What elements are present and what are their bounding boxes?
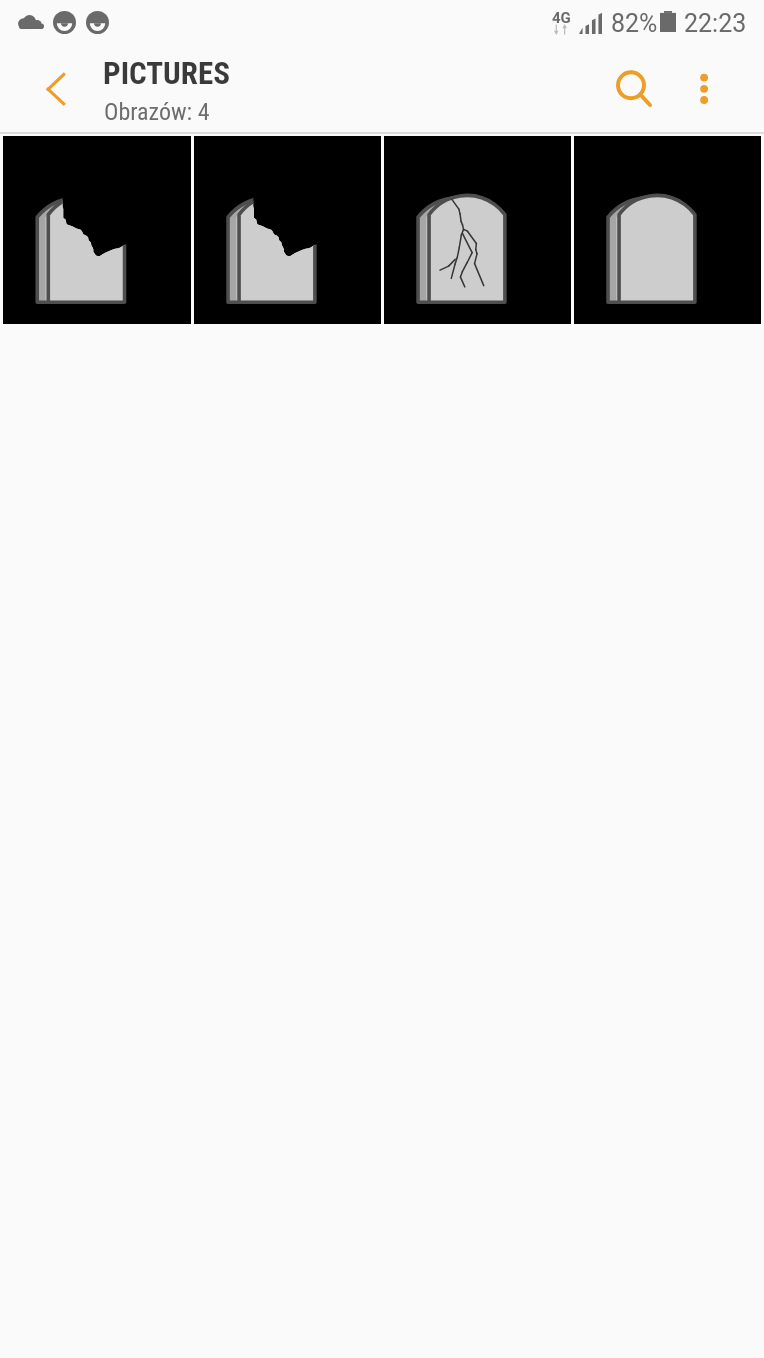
staticText: PICTURES [103, 55, 230, 91]
staticText: 4G [552, 9, 571, 27]
button[interactable]: Picture 3 [384, 136, 571, 324]
staticText: Obrazów: 4 [104, 98, 210, 126]
button[interactable]: Picture 4 [574, 136, 761, 324]
staticText: 22:23 [684, 9, 747, 38]
button[interactable]: Picture 2 [194, 136, 381, 324]
button[interactable]: Search [604, 58, 658, 112]
button[interactable]: More options [677, 58, 731, 112]
button[interactable]: Back [30, 65, 82, 117]
button[interactable]: Picture 1 [3, 136, 191, 324]
staticText: 82% [611, 9, 658, 38]
